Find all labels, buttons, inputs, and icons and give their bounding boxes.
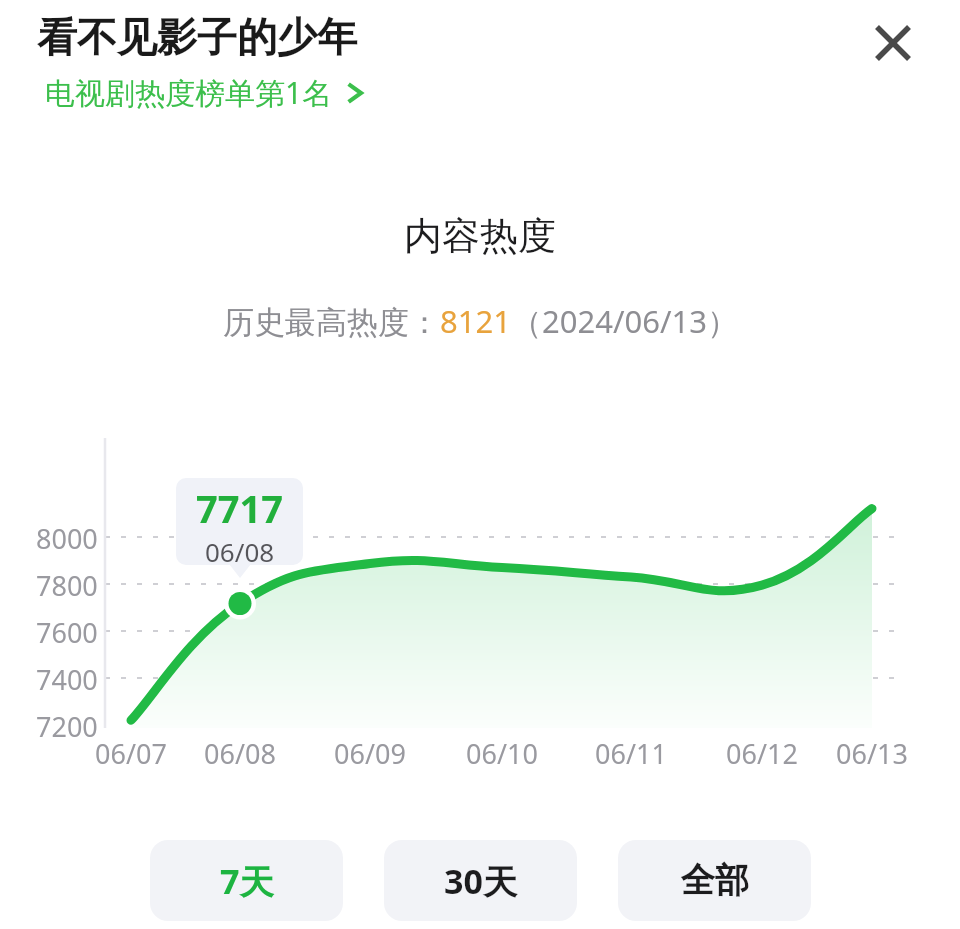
staticText: 7600: [36, 614, 98, 651]
staticText: 看不见影子的少年: [37, 12, 357, 62]
staticText: 06/13: [836, 735, 908, 772]
staticText: 06/08: [205, 534, 275, 565]
button[interactable]: 全部: [618, 840, 811, 921]
button[interactable]: 30天: [384, 840, 577, 921]
staticText: 电视剧热度榜单第1名: [45, 72, 333, 113]
staticText: 7天: [220, 858, 274, 904]
staticText: 7717: [196, 482, 283, 534]
staticText: 7400: [36, 661, 98, 698]
button[interactable]: 电视剧热度榜单第1名: [45, 72, 365, 113]
staticText: 7200: [36, 708, 98, 745]
button[interactable]: Close: [855, 5, 931, 81]
staticText: 30天: [444, 858, 517, 904]
staticText: 内容热度: [404, 212, 556, 260]
staticText: 06/11: [595, 735, 667, 772]
staticText: 7800: [36, 567, 98, 604]
staticText: 06/07: [95, 735, 167, 772]
staticText: 06/09: [334, 735, 406, 772]
staticText: 8000: [36, 520, 98, 557]
button[interactable]: 7天: [150, 840, 343, 921]
staticText: 06/08: [204, 735, 276, 772]
staticText: 历史最高热度：8121（2024/06/13）: [223, 300, 738, 342]
staticText: 06/12: [726, 735, 798, 772]
staticText: 06/10: [466, 735, 538, 772]
staticText: 全部: [681, 859, 749, 902]
